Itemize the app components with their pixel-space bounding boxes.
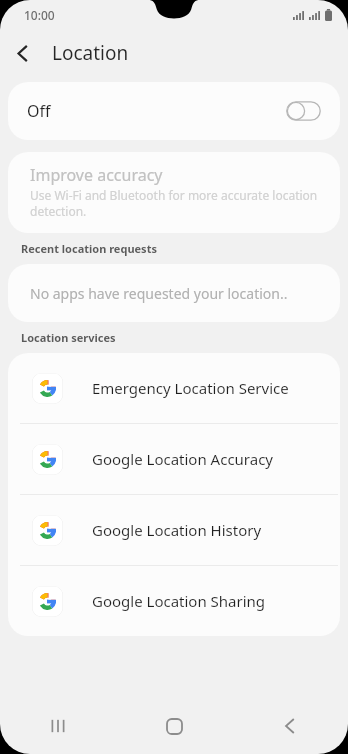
staticText: Use Wi-Fi and Bluetooth for more accurat… [30, 187, 318, 219]
staticText: Google Location Sharing [92, 591, 266, 611]
staticText: Google Location Accuracy [92, 449, 274, 469]
staticText: Location [52, 40, 129, 66]
staticText: Emergency Location Service [92, 378, 289, 398]
staticText: Off [27, 100, 51, 122]
button[interactable]: Emergency Location Service [8, 353, 340, 423]
button[interactable]: Improve accuracy [8, 152, 340, 233]
staticText: Recent location requests [21, 241, 157, 256]
button[interactable]: Off [8, 82, 340, 140]
button[interactable]: No apps have requested your location.. [8, 264, 340, 322]
button[interactable]: Back [0, 30, 46, 76]
staticText: Location services [21, 330, 116, 345]
staticText: Improve accuracy [30, 164, 163, 186]
button[interactable]: Google Location History [8, 495, 340, 565]
button[interactable]: Home [116, 698, 232, 754]
button[interactable]: Back [232, 698, 348, 754]
staticText: 10:00 [24, 7, 55, 23]
button[interactable]: Google Location Accuracy [8, 424, 340, 494]
staticText: No apps have requested your location.. [30, 284, 288, 303]
staticText: Google Location History [92, 520, 262, 540]
button[interactable]: Recent apps [0, 698, 116, 754]
button[interactable]: Google Location Sharing [8, 566, 340, 636]
